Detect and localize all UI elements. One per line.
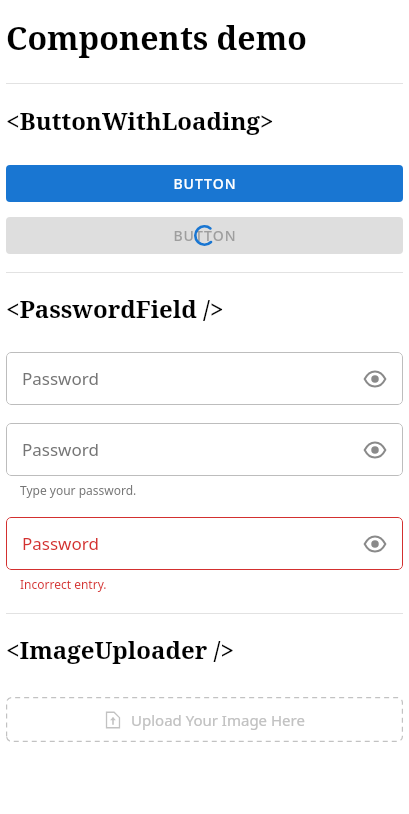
button[interactable]: Toggle password visibility	[355, 359, 395, 399]
staticText: Incorrect entry.	[20, 576, 107, 592]
staticText: Password	[22, 438, 355, 461]
staticText: BUTTON	[173, 174, 237, 193]
button[interactable]: BUTTON	[6, 165, 403, 202]
button[interactable]: Password	[6, 423, 403, 476]
staticText: Password	[22, 367, 355, 390]
staticText: Upload Your Image Here	[131, 710, 305, 730]
staticText: <PasswordField />	[6, 292, 224, 325]
staticText: Password	[22, 532, 355, 555]
button[interactable]: Upload Your Image Here	[6, 697, 403, 742]
staticText: Components demo	[6, 16, 307, 60]
staticText: Type your password.	[20, 482, 137, 498]
button[interactable]: Toggle password visibility	[355, 430, 395, 470]
button[interactable]: Password	[6, 517, 403, 570]
button[interactable]: Password	[6, 352, 403, 405]
button[interactable]: Toggle password visibility	[355, 524, 395, 564]
staticText: BUTTON	[173, 226, 237, 245]
staticText: <ButtonWithLoading>	[6, 104, 274, 137]
staticText: <ImageUploader />	[6, 633, 234, 666]
button[interactable]: BUTTON	[6, 217, 403, 254]
